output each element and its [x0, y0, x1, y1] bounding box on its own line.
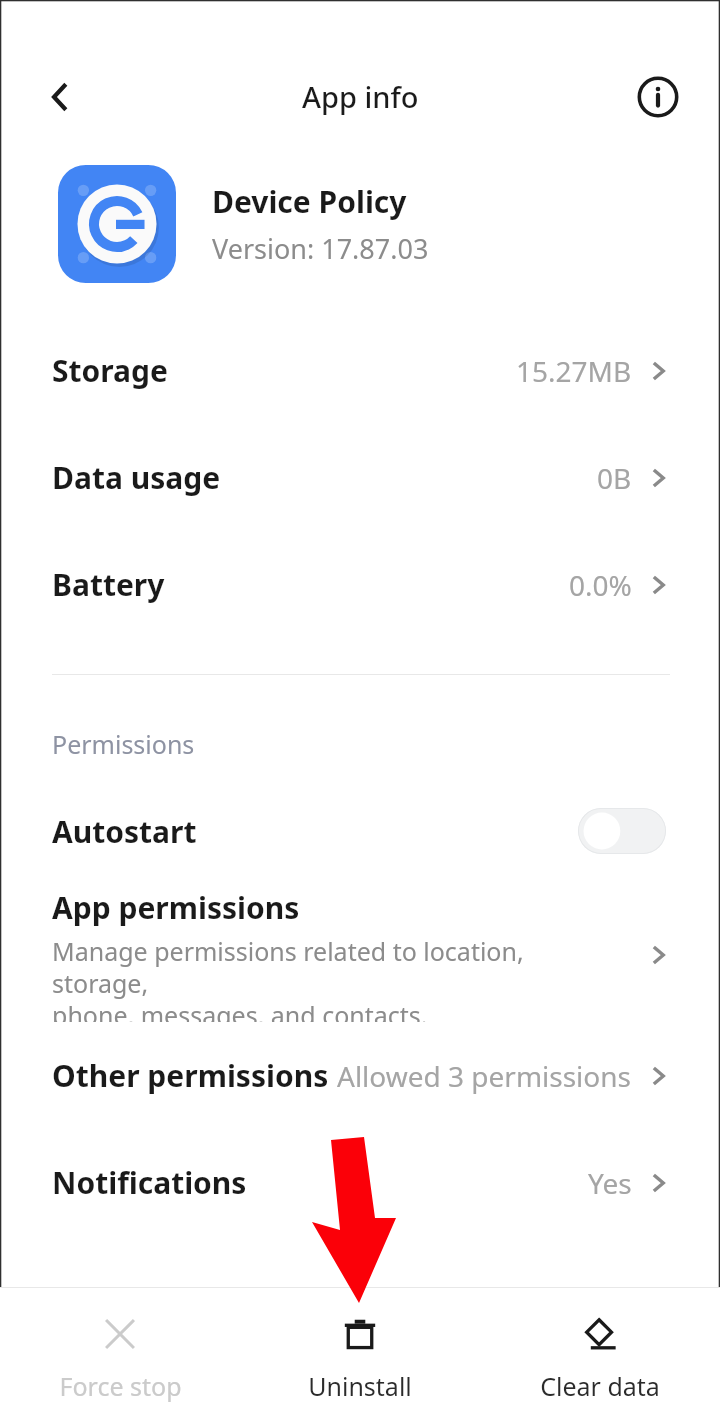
button[interactable]: Battery	[0, 531, 720, 638]
staticText: Yes	[588, 1164, 632, 1202]
button[interactable]: Uninstall	[240, 1301, 480, 1413]
button[interactable]: App permissions	[0, 887, 720, 1022]
staticText: Allowed 3 permissions	[337, 1057, 632, 1095]
button[interactable]: App details info	[618, 57, 698, 137]
button[interactable]: Autostart	[0, 775, 720, 887]
staticText: Permissions	[52, 727, 195, 761]
button[interactable]: Other permissions	[0, 1022, 720, 1129]
staticText: 15.27MB	[516, 352, 632, 390]
staticText: Storage	[52, 350, 168, 391]
button[interactable]: Back	[22, 57, 102, 137]
button[interactable]: Force stop	[0, 1301, 240, 1413]
staticText: Force stop	[59, 1369, 182, 1403]
staticText: Version: 17.87.03	[212, 230, 429, 267]
staticText: Device Policy	[212, 181, 407, 222]
staticText: Clear data	[540, 1369, 660, 1403]
staticText: App info	[302, 77, 419, 116]
staticText: 0.0%	[569, 566, 632, 604]
staticText: App permissions	[52, 887, 300, 928]
button[interactable]: Autostart toggle	[578, 808, 666, 854]
staticText: Battery	[52, 564, 165, 605]
button[interactable]: Storage	[0, 317, 720, 424]
staticText: 0B	[597, 459, 632, 497]
staticText: Uninstall	[308, 1369, 412, 1403]
button[interactable]: Data usage	[0, 424, 720, 531]
staticText: Data usage	[52, 457, 221, 498]
staticText: Manage permissions related to location, …	[52, 934, 614, 1022]
button[interactable]: Clear data	[480, 1301, 720, 1413]
staticText: Autostart	[52, 811, 197, 852]
staticText: Other permissions	[52, 1055, 329, 1096]
staticText: Notifications	[52, 1162, 247, 1203]
button[interactable]: Notifications	[0, 1129, 720, 1236]
